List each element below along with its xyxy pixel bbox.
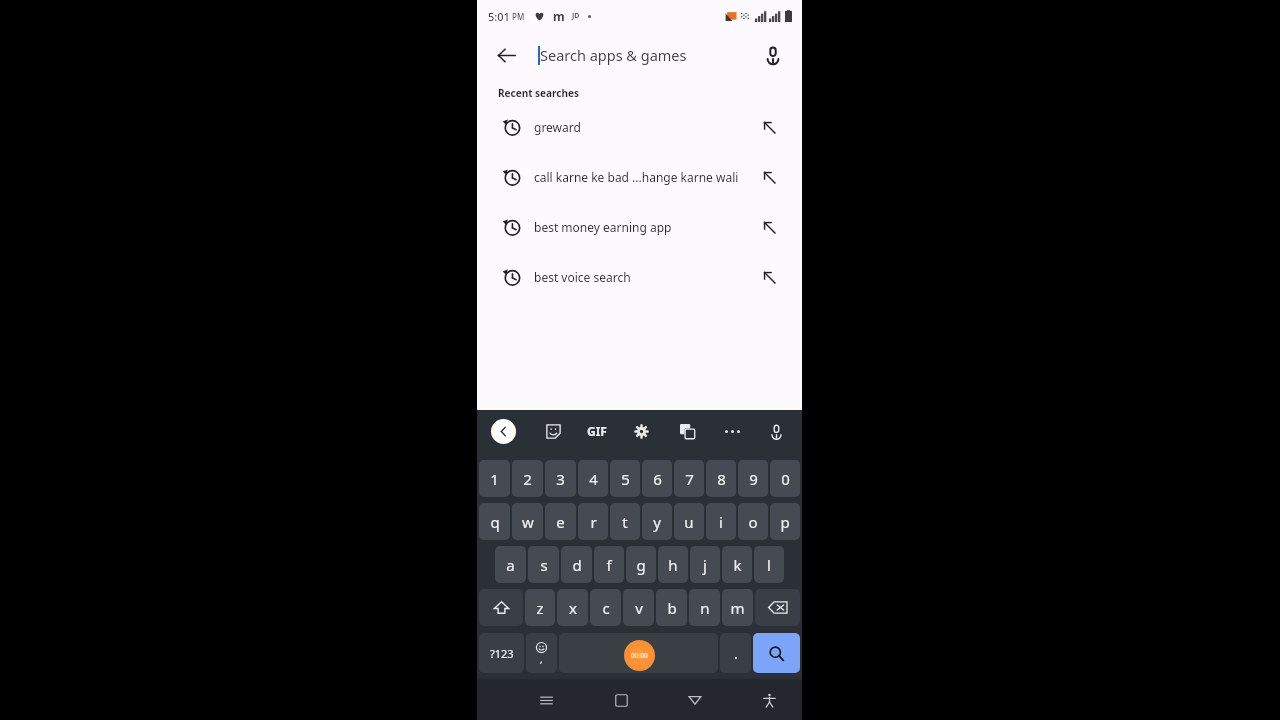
button[interactable]: Shift [479, 589, 523, 626]
staticText: e [556, 512, 565, 532]
staticText: Search apps & games [540, 45, 687, 65]
staticText: , [540, 653, 543, 665]
button[interactable]: Space [559, 633, 718, 673]
button[interactable]: 0 [770, 460, 800, 497]
staticText: w [522, 512, 534, 532]
button[interactable]: 5 [610, 460, 640, 497]
button[interactable]: Search [753, 633, 800, 673]
staticText: 1 [490, 469, 499, 489]
button[interactable]: k [722, 546, 752, 583]
button[interactable]: n [689, 589, 720, 626]
button[interactable]: Settings [629, 419, 653, 443]
button[interactable]: Insert query [758, 166, 780, 188]
staticText: 9 [749, 469, 758, 489]
button[interactable]: p [770, 503, 800, 540]
staticText: f [606, 555, 612, 575]
button[interactable]: r [578, 503, 608, 540]
staticText: best money earning app [534, 219, 758, 235]
staticText: k [733, 555, 742, 575]
staticText: a [506, 555, 515, 575]
button[interactable]: q [479, 503, 510, 540]
button[interactable]: m [722, 589, 753, 626]
staticText: i [719, 512, 723, 532]
button[interactable]: e [545, 503, 576, 540]
staticText: 3 [556, 469, 565, 489]
staticText: 7 [685, 469, 694, 489]
staticText: 0 [781, 469, 790, 489]
staticText: 00:00 [631, 651, 648, 660]
button[interactable]: 2 [512, 460, 543, 497]
button[interactable]: Screen recorder timer [624, 640, 655, 671]
button[interactable]: GIF [587, 423, 607, 439]
staticText: 5:01 [488, 9, 510, 24]
staticText: v [635, 598, 643, 618]
button[interactable]: c [590, 589, 621, 626]
button[interactable]: v [623, 589, 654, 626]
button[interactable]: Translate [675, 419, 699, 443]
button[interactable]: Home [604, 683, 638, 717]
button[interactable]: d [561, 546, 592, 583]
button[interactable]: Voice search [758, 40, 788, 70]
button[interactable]: u [674, 503, 704, 540]
button[interactable]: b [656, 589, 687, 626]
staticText: p [780, 512, 790, 532]
button[interactable]: Insert query [758, 116, 780, 138]
button[interactable]: g [626, 546, 656, 583]
button[interactable]: 7 [674, 460, 704, 497]
button[interactable]: Backspace [755, 589, 800, 626]
button[interactable]: z [525, 589, 555, 626]
button[interactable]: Emoji [526, 633, 557, 673]
staticText: l [767, 555, 771, 575]
button[interactable]: best voice search [477, 252, 802, 302]
button[interactable]: Menu [529, 683, 563, 717]
staticText: 8 [717, 469, 726, 489]
button[interactable]: Insert query [758, 266, 780, 288]
staticText: ?123 [490, 646, 514, 661]
staticText: d [572, 555, 582, 575]
button[interactable]: 3 [545, 460, 576, 497]
button[interactable]: Voice input [764, 419, 788, 443]
staticText: u [684, 512, 694, 532]
button[interactable]: ?123 [479, 633, 524, 673]
button[interactable]: s [528, 546, 559, 583]
button[interactable]: 8 [706, 460, 736, 497]
staticText: . [734, 644, 738, 663]
button[interactable]: w [512, 503, 543, 540]
staticText: z [536, 598, 544, 618]
button[interactable]: j [690, 546, 720, 583]
staticText: PM [512, 11, 525, 22]
button[interactable]: l [754, 546, 784, 583]
staticText: n [700, 598, 710, 618]
button[interactable]: Insert query [758, 216, 780, 238]
button[interactable]: More options [720, 419, 744, 443]
button[interactable]: t [610, 503, 640, 540]
button[interactable]: a [495, 546, 526, 583]
button[interactable]: 6 [642, 460, 672, 497]
button[interactable]: Search apps & games [538, 37, 756, 73]
button[interactable]: x [557, 589, 588, 626]
button[interactable]: f [594, 546, 624, 583]
button[interactable]: best money earning app [477, 202, 802, 252]
button[interactable]: Stickers [541, 419, 565, 443]
button[interactable]: greward [477, 102, 802, 152]
staticText: best voice search [534, 269, 758, 285]
staticText: 6 [653, 469, 662, 489]
button[interactable]: o [738, 503, 768, 540]
button[interactable]: Back [678, 683, 712, 717]
button[interactable]: Back [491, 40, 521, 70]
button[interactable]: 1 [479, 460, 510, 497]
staticText: m [553, 8, 565, 24]
staticText: 5 [621, 469, 630, 489]
staticText: r [590, 512, 597, 532]
staticText: t [622, 512, 628, 532]
button[interactable]: 9 [738, 460, 768, 497]
button[interactable]: Close toolbar [491, 419, 516, 444]
button[interactable]: . [720, 633, 751, 673]
button[interactable]: y [642, 503, 672, 540]
button[interactable]: call karne ke bad ...hange karne wali [477, 152, 802, 202]
button[interactable]: Accessibility [752, 683, 786, 717]
staticText: y [653, 512, 661, 532]
button[interactable]: i [706, 503, 736, 540]
button[interactable]: h [658, 546, 688, 583]
button[interactable]: 4 [578, 460, 608, 497]
